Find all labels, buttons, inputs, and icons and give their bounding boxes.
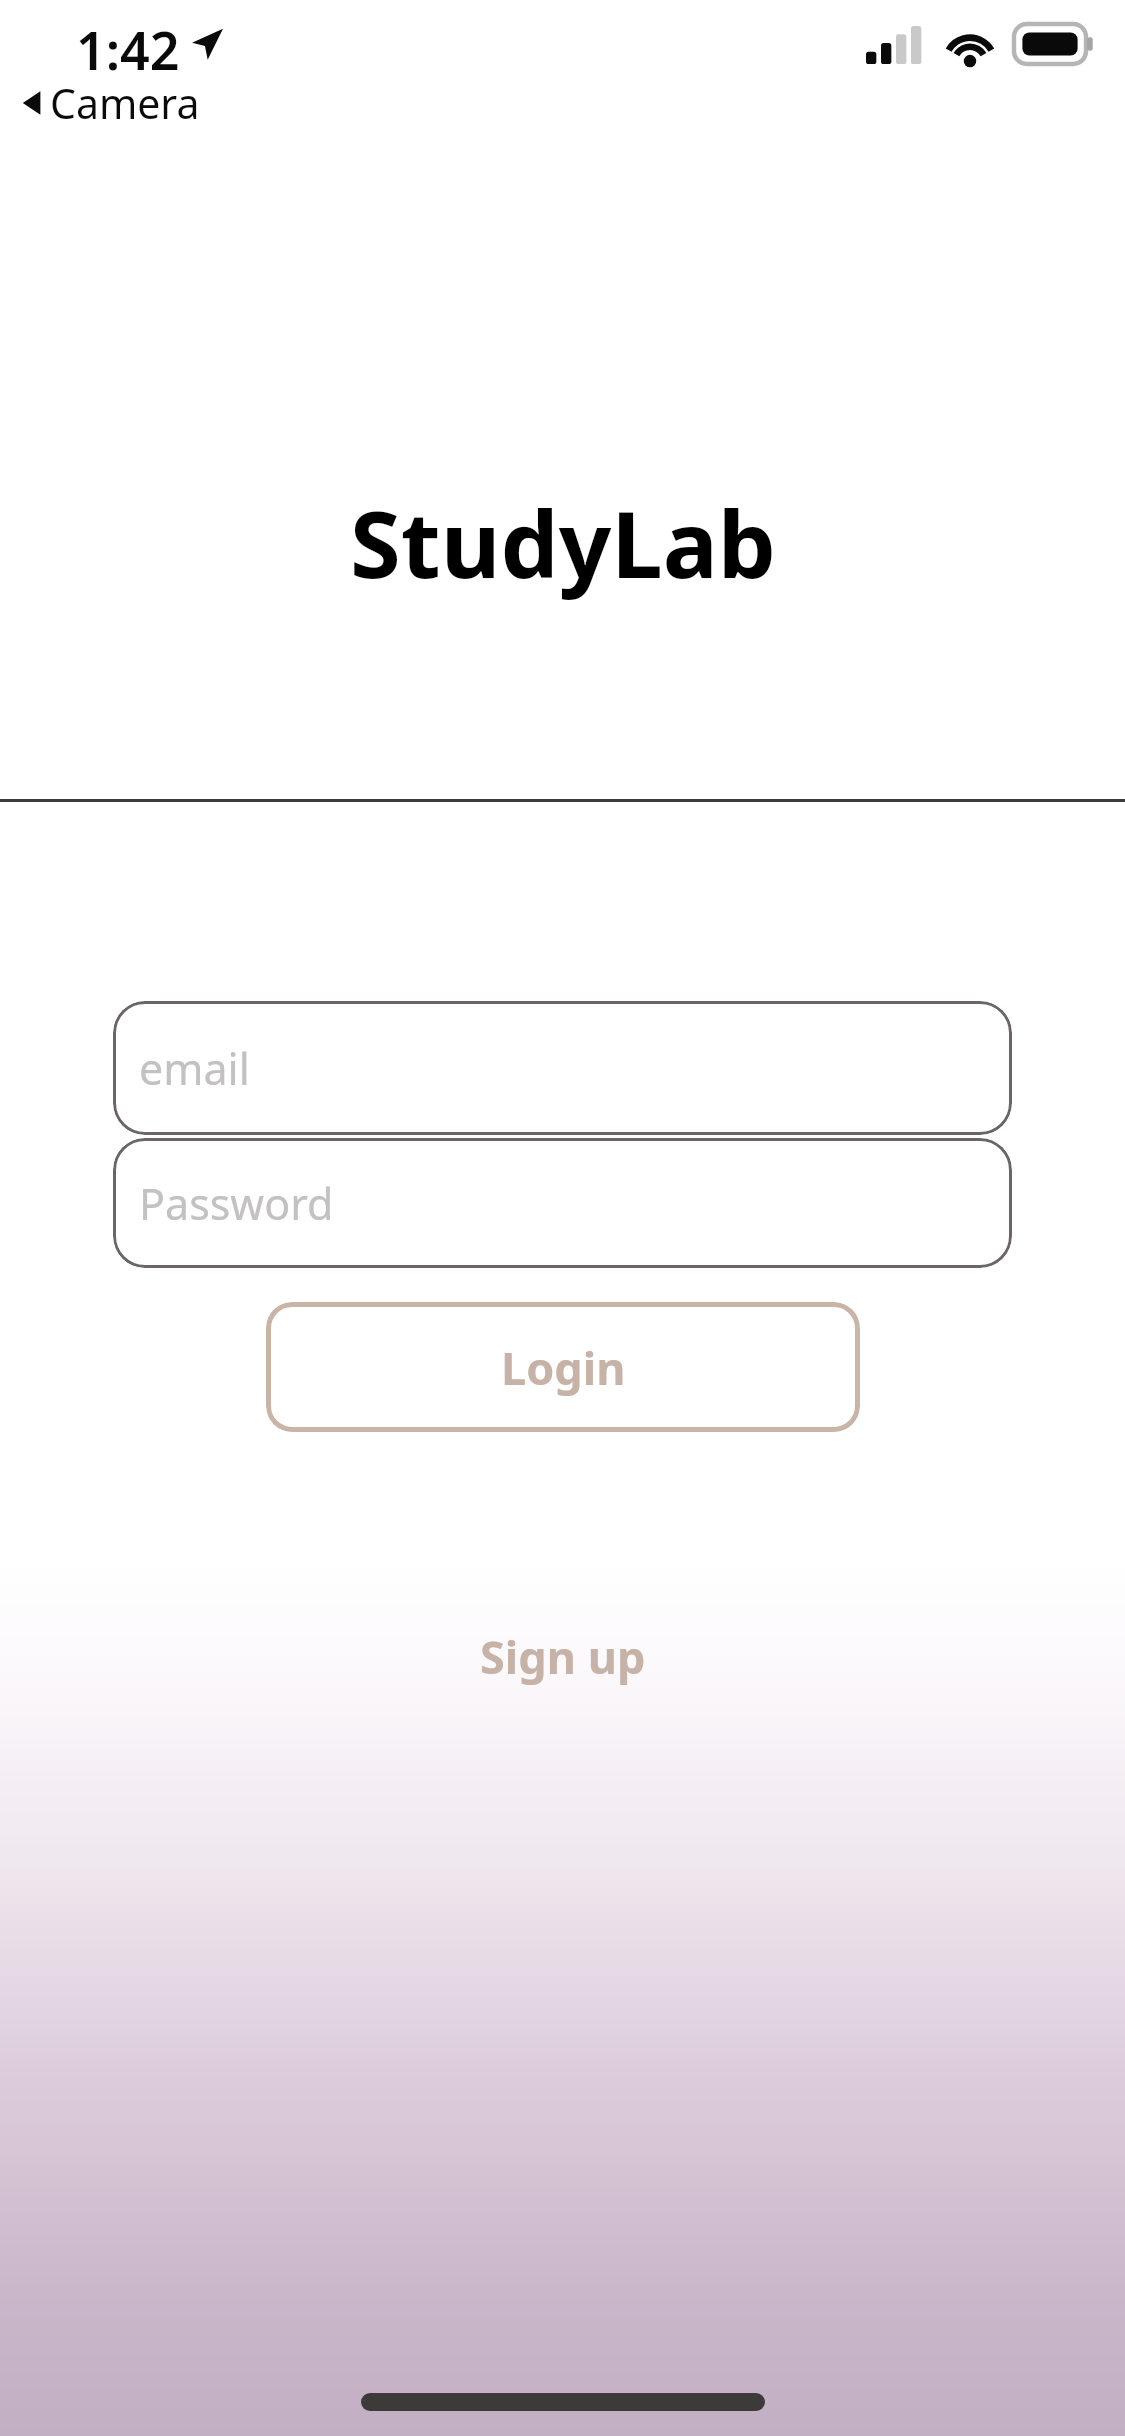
staticText: StudyLab	[350, 480, 776, 605]
button[interactable]: Login	[266, 1302, 860, 1432]
staticText: Camera	[50, 75, 200, 131]
staticText: 1:42	[76, 14, 180, 85]
button[interactable]: Password	[113, 1138, 1012, 1268]
staticText: Password	[139, 1174, 334, 1233]
button[interactable]: Back to Camera	[16, 72, 206, 134]
staticText: Sign up	[480, 1626, 646, 1687]
staticText: email	[139, 1039, 250, 1098]
button[interactable]: email	[113, 1001, 1012, 1135]
button[interactable]: Sign up	[456, 1616, 670, 1697]
staticText: Login	[501, 1337, 626, 1398]
